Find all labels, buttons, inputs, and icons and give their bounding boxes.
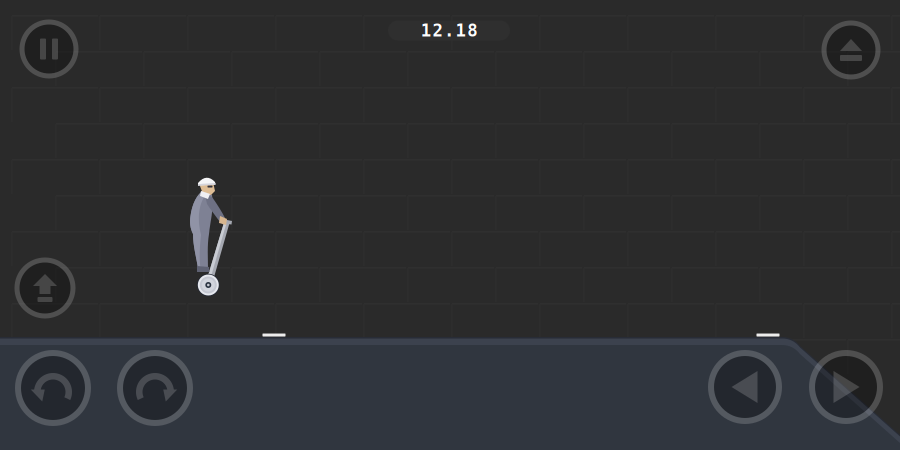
button[interactable]: Pause [22,22,76,76]
button[interactable]: Forward [812,353,880,421]
button[interactable]: Lean back [18,353,88,423]
button[interactable]: Lean forward [120,353,190,423]
staticText: 12.18 [421,21,477,40]
button[interactable]: Jump [17,260,73,316]
button[interactable]: Restart level [824,23,878,77]
button[interactable]: Reverse [711,353,779,421]
